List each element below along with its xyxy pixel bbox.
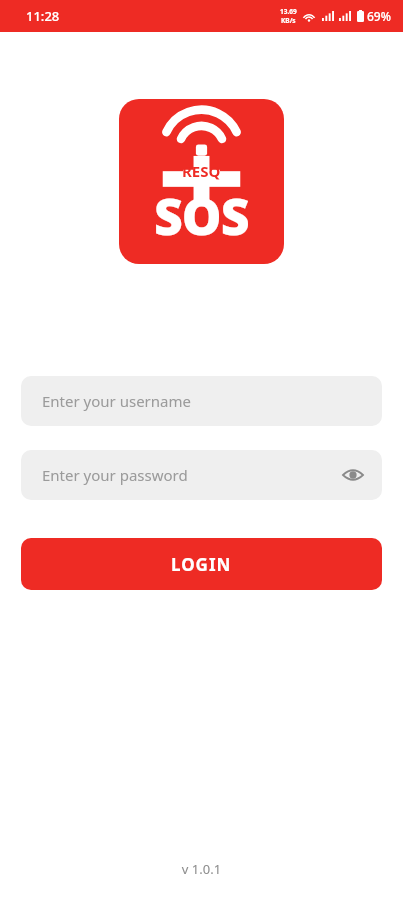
staticText: Enter your password [42,465,188,485]
staticText: LOGIN [171,553,232,576]
staticText: Enter your username [42,391,191,411]
staticText: 69% [367,8,391,24]
staticText: KB/s [281,16,296,25]
staticText: 13.69 [280,7,297,16]
button[interactable]: Enter your username [21,376,382,426]
staticText: SOS [154,182,249,250]
button[interactable]: Enter your password [21,450,382,500]
staticText: 11:28 [26,7,60,25]
button[interactable]: Show password [336,458,370,492]
button[interactable]: LOGIN [21,538,382,590]
staticText: v 1.0.1 [0,860,403,878]
staticText: RESQ [182,161,221,181]
